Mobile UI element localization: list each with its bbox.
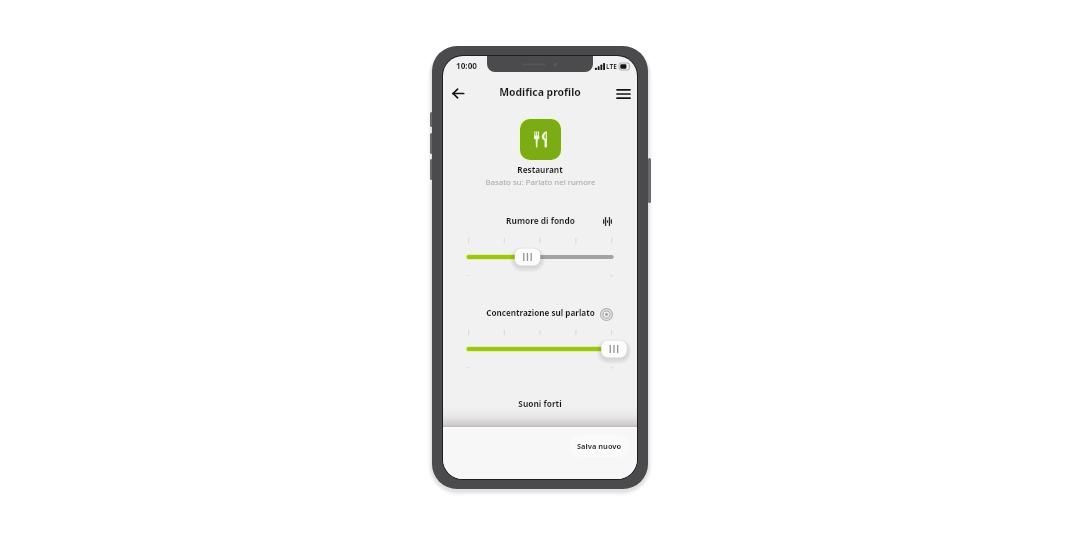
button[interactable]: Level slider [443, 231, 637, 277]
staticText: LTE [606, 62, 617, 71]
staticText: Modifica profilo [499, 85, 581, 99]
button[interactable]: Menu [613, 83, 634, 104]
staticText: Restaurant [517, 164, 563, 175]
button[interactable]: Speech focus [600, 308, 613, 321]
staticText: 10:00 [456, 60, 478, 71]
button[interactable]: Level slider [443, 323, 637, 369]
staticText: Suoni forti [518, 398, 562, 409]
button[interactable]: Restaurant profile [520, 119, 561, 160]
button[interactable]: Salva nuovo [569, 435, 630, 457]
staticText: Concentrazione sul parlato [486, 307, 595, 318]
button[interactable]: Sound waveform [601, 215, 614, 228]
staticText: Basato su: Parlato nel rumore [485, 177, 596, 188]
staticText: Rumore di fondo [506, 215, 575, 226]
button[interactable]: Back [447, 83, 468, 104]
staticText: Salva nuovo [577, 441, 622, 451]
